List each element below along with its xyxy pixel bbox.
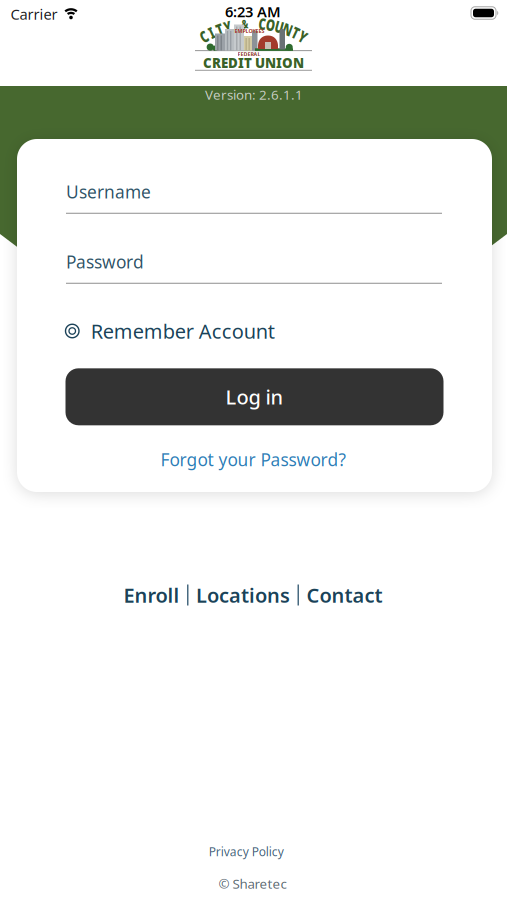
button[interactable]: Forgot your Password? <box>160 448 346 471</box>
button[interactable]: Enroll <box>123 582 179 608</box>
staticText: CREDIT UNION <box>203 54 304 72</box>
staticText: Version: 2.6.1.1 <box>205 86 303 103</box>
button[interactable]: Password <box>66 250 442 284</box>
staticText: U <box>273 16 285 37</box>
staticText: Privacy Policy <box>209 844 284 860</box>
staticText: & <box>240 16 250 32</box>
staticText: Log in <box>225 383 283 410</box>
staticText: C <box>257 13 267 34</box>
staticText: © Sharetec <box>218 875 286 892</box>
staticText: Username <box>66 180 151 203</box>
staticText: Remember Account <box>91 318 275 344</box>
staticText: T <box>215 19 224 40</box>
staticText: O <box>264 14 277 35</box>
staticText: Password <box>66 250 144 273</box>
staticText: Enroll <box>123 582 179 608</box>
button[interactable]: Remember Account <box>65 318 275 344</box>
staticText: Carrier <box>10 4 57 24</box>
staticText: Contact <box>306 582 382 608</box>
staticText: FEDERAL <box>237 51 260 58</box>
staticText: C <box>199 26 209 47</box>
staticText: EMPLOYEES <box>234 27 264 35</box>
button[interactable]: Username <box>66 180 442 214</box>
staticText: I <box>208 22 215 43</box>
button[interactable]: Locations <box>196 582 290 608</box>
staticText: T <box>291 22 300 43</box>
button[interactable]: Log in <box>65 368 443 425</box>
staticText: Y <box>222 16 233 37</box>
staticText <box>234 14 238 35</box>
staticText <box>251 13 255 34</box>
staticText: Y <box>298 26 309 47</box>
staticText: 6:23 AM <box>225 2 281 21</box>
staticText: Forgot your Password? <box>160 448 346 471</box>
button[interactable]: Contact <box>306 582 382 608</box>
staticText: N <box>281 19 294 40</box>
button[interactable]: Privacy Policy <box>209 844 284 860</box>
staticText: Locations <box>196 582 290 608</box>
